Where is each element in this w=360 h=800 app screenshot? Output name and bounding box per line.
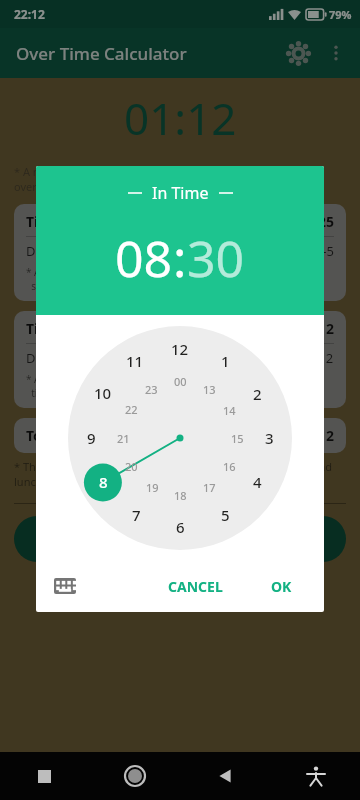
button[interactable]: Time In: [14, 204, 346, 301]
button[interactable]: Settings: [282, 37, 314, 69]
staticText: Time In: [26, 212, 79, 231]
staticText: 1: [221, 351, 230, 371]
staticText: OK: [271, 577, 292, 596]
staticText: CANCEL: [168, 577, 223, 596]
staticText: 2: [253, 384, 262, 404]
staticText: 3: [265, 428, 274, 448]
staticText: 01:12: [124, 88, 237, 148]
staticText: Over Time Calculator: [16, 42, 187, 65]
button[interactable]: OK: [261, 571, 302, 602]
button[interactable]: Home: [115, 756, 155, 796]
staticText: 4: [253, 472, 262, 492]
staticText: 08:12: [298, 426, 334, 445]
staticText: 11: [126, 351, 144, 371]
staticText: * The total work hour was calculated by …: [14, 459, 346, 489]
staticText: 00:12: [300, 349, 334, 367]
staticText: Difference: [26, 242, 90, 260]
button[interactable]: [68, 326, 292, 550]
staticText: 18:12: [298, 319, 334, 338]
button[interactable]: 30: [187, 224, 245, 292]
staticText: * A minimum work hour of 8 hours is requ…: [14, 164, 346, 194]
staticText: Total Hours: [26, 426, 106, 445]
staticText: 21: [117, 431, 130, 446]
staticText: 7: [132, 505, 141, 525]
button[interactable]: Back: [205, 756, 245, 796]
button[interactable]: 08: [115, 224, 173, 292]
staticText: Difference: [26, 349, 90, 367]
staticText: * Actual in time of the shift.: [26, 265, 129, 293]
staticText: In Time: [152, 182, 209, 204]
staticText: 18: [174, 488, 187, 503]
staticText: 19: [146, 480, 159, 495]
staticText: 79%: [329, 7, 352, 22]
staticText: Time Out: [26, 319, 91, 338]
staticText: 13: [203, 382, 216, 397]
button[interactable]: More options: [320, 37, 352, 69]
staticText: 09:25: [298, 212, 334, 231]
button[interactable]: Keyboard input: [50, 571, 80, 601]
staticText: 17: [203, 480, 216, 495]
staticText: 6: [176, 517, 185, 537]
staticText: 22: [125, 402, 138, 417]
staticText: * Actual out time.: [26, 372, 82, 400]
staticText: Insert Employee Data: [99, 529, 261, 549]
button[interactable]: Total Hours: [14, 418, 346, 453]
staticText: 10: [94, 383, 112, 403]
staticText: 15: [231, 431, 244, 446]
button[interactable]: Insert Employee Data: [14, 516, 346, 562]
staticText: 16: [223, 459, 236, 474]
staticText: 00: [174, 374, 187, 389]
button[interactable]: Recents: [24, 756, 64, 796]
staticText: 20: [125, 459, 138, 474]
button[interactable]: CANCEL: [158, 571, 233, 602]
button[interactable]: Time Out: [14, 311, 346, 408]
staticText: 14: [223, 403, 236, 418]
staticText: :: [173, 224, 187, 292]
staticText: 8: [99, 472, 108, 492]
staticText: 23: [145, 382, 158, 397]
staticText: 5: [221, 505, 230, 525]
staticText: 9: [87, 428, 96, 448]
staticText: 12: [171, 339, 189, 359]
staticText: 22:12: [14, 6, 45, 22]
staticText: 00:-5: [304, 242, 334, 260]
button[interactable]: Accessibility: [296, 756, 336, 796]
